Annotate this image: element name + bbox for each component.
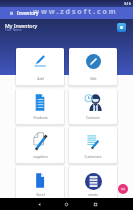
staticText: www.zdsoft.com (33, 7, 118, 17)
button[interactable] (16, 89, 64, 124)
staticText: 3:16 (124, 1, 131, 6)
staticText: Products (33, 115, 48, 120)
button[interactable]: Back (35, 198, 44, 210)
button[interactable]: Open navigation menu (6, 7, 17, 19)
staticText: Your Name (5, 28, 22, 32)
button[interactable]: Home (62, 198, 71, 210)
button[interactable] (69, 127, 117, 163)
staticText: Add (37, 76, 44, 81)
button[interactable] (16, 127, 64, 163)
staticText: Customers (84, 154, 102, 159)
staticText: My Inventory (5, 22, 38, 29)
button[interactable] (69, 89, 117, 124)
staticText: free for personal use (2, 200, 47, 206)
button[interactable] (16, 166, 64, 198)
staticText: Contacts (86, 115, 100, 120)
staticText: stocks (88, 192, 98, 197)
button[interactable] (16, 48, 64, 85)
button[interactable]: Chat (118, 184, 128, 194)
staticText: Inventory (17, 10, 39, 16)
staticText: suppliers (33, 154, 48, 159)
button[interactable] (69, 166, 117, 198)
button[interactable]: Profile (117, 23, 126, 32)
staticText: Edit (90, 76, 97, 81)
button[interactable] (69, 48, 117, 85)
staticText: Excel (36, 192, 45, 197)
button[interactable]: Recents (91, 198, 100, 210)
